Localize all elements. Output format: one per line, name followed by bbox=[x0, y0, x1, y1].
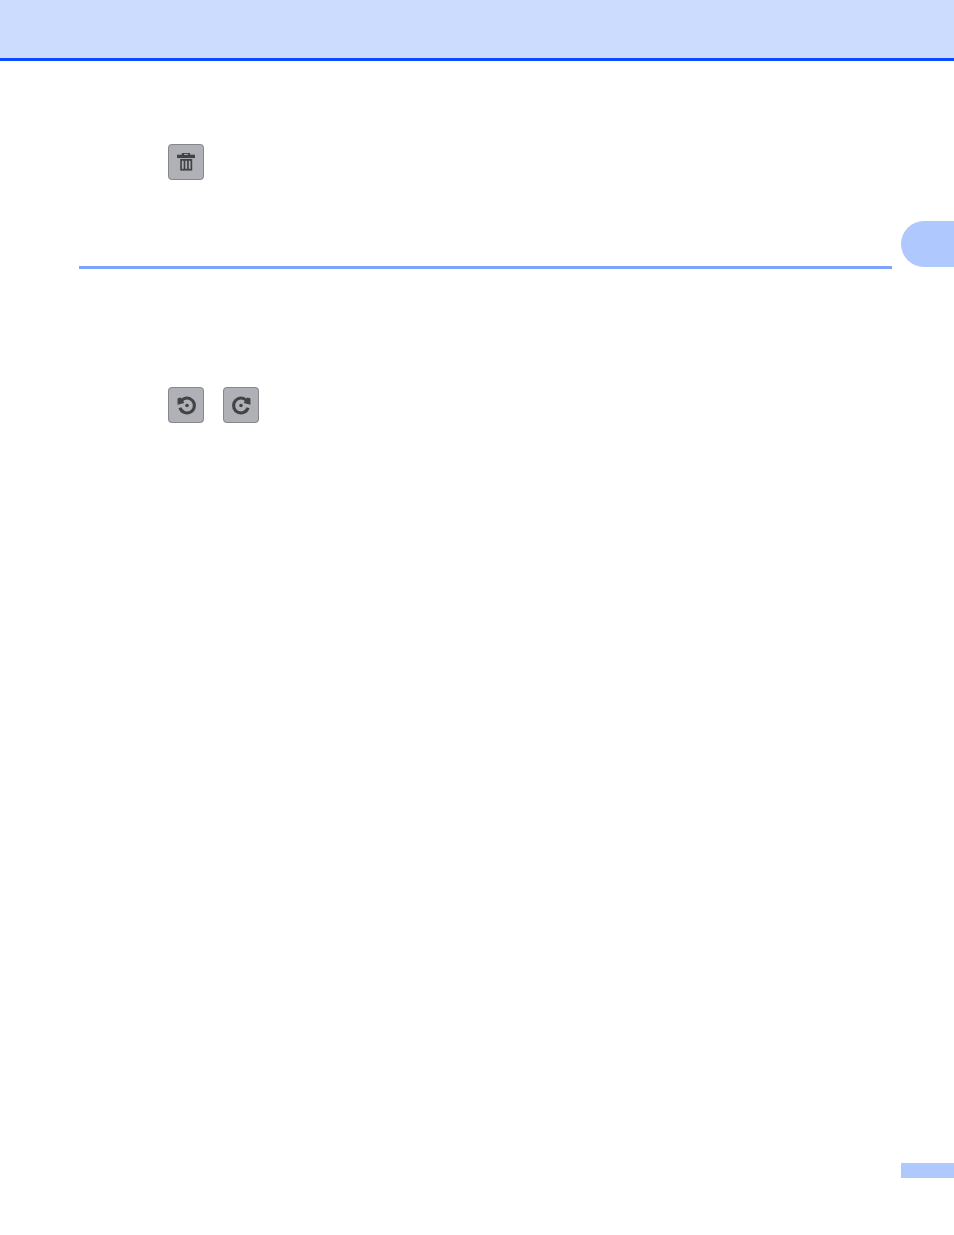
button[interactable]: Redo bbox=[223, 387, 259, 423]
button[interactable]: Panel tab bbox=[901, 221, 954, 267]
button[interactable]: Delete bbox=[168, 144, 204, 180]
button[interactable]: Undo bbox=[168, 387, 204, 423]
